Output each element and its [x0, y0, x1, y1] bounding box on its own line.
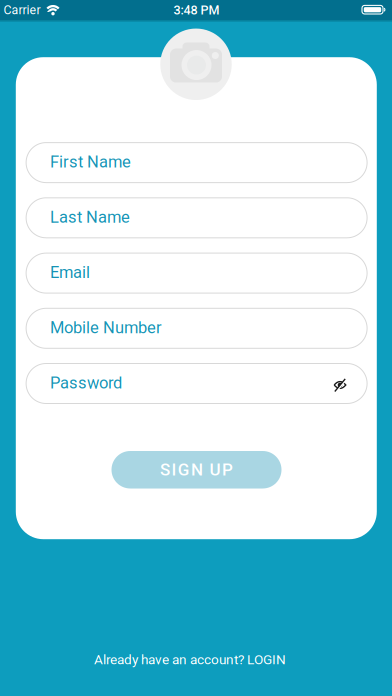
staticText: 3:48 PM [173, 3, 219, 18]
staticText: Mobile Number [50, 318, 162, 337]
staticText: Password [50, 373, 122, 392]
button[interactable]: Add profile photo [160, 28, 232, 100]
staticText: I [171, 460, 176, 480]
staticText: S [160, 460, 170, 480]
staticText: Email [50, 263, 90, 282]
staticText: N [191, 460, 203, 480]
button[interactable]: First Name [26, 143, 367, 183]
button[interactable]: Password [26, 363, 367, 403]
staticText: P [222, 460, 233, 480]
staticText: Already have an account? LOGIN [94, 651, 286, 667]
button[interactable]: Mobile Number [26, 308, 367, 348]
staticText: Carrier [3, 3, 40, 17]
button[interactable]: S [111, 451, 281, 488]
staticText: U [210, 460, 221, 480]
staticText: Last Name [50, 207, 130, 227]
button[interactable]: Already have an account? LOGIN [94, 651, 286, 667]
staticText: G [178, 460, 190, 480]
staticText: First Name [50, 152, 131, 171]
button[interactable]: Show password [329, 374, 351, 396]
button[interactable]: Last Name [26, 198, 367, 238]
button[interactable]: Email [26, 253, 367, 293]
